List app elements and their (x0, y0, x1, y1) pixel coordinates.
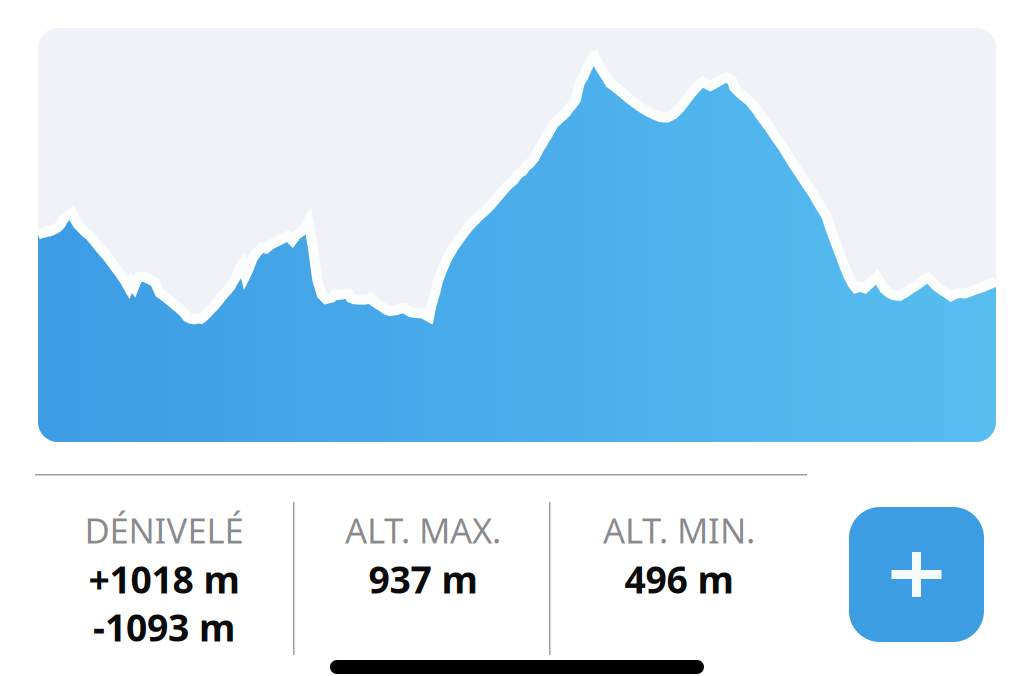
staticText: DÉNIVELÉ (84, 507, 243, 553)
staticText: 496 m (624, 554, 733, 604)
staticText: 937 m (368, 554, 477, 604)
button[interactable]: Add (849, 507, 984, 642)
staticText: +1018 m (88, 554, 239, 604)
staticText: ALT. MAX. (345, 507, 501, 553)
staticText: ALT. MIN. (603, 507, 755, 553)
staticText: -1093 m (93, 602, 235, 652)
